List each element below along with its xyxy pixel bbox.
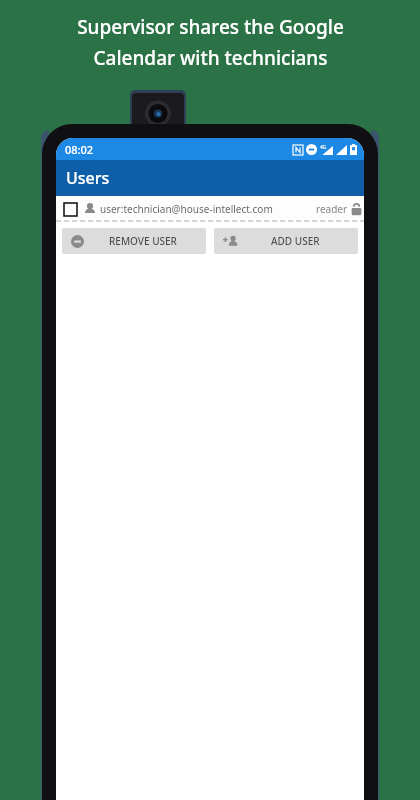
button[interactable]: REMOVE USER <box>62 228 206 254</box>
staticText: reader <box>316 202 348 216</box>
button[interactable]: user:technician@house-intellect.com <box>56 196 364 222</box>
staticText: Users <box>66 167 110 189</box>
staticText: REMOVE USER <box>109 234 177 248</box>
staticText: ADD USER <box>271 234 320 248</box>
staticText: user:technician@house-intellect.com <box>100 202 273 216</box>
button[interactable]: ADD USER <box>214 228 358 254</box>
staticText: 08:02 <box>65 142 94 157</box>
staticText: Supervisor shares the Google <box>77 14 344 40</box>
staticText: 4G <box>320 144 327 151</box>
staticText: Calendar with technicians <box>93 45 328 71</box>
